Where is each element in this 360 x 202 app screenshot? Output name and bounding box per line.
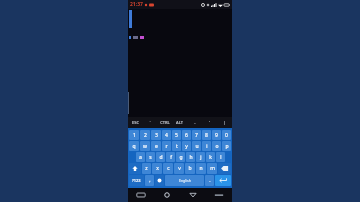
staticText: | [223,120,226,125]
button[interactable]: s [146,152,155,162]
staticText: 21:37 [130,1,143,8]
button[interactable]: Keyboard [206,188,232,202]
button[interactable]: l [216,152,225,162]
button[interactable]: ?123 [129,175,144,186]
staticText: y [185,143,188,150]
staticText: x [156,165,159,172]
button[interactable]: x [152,163,162,174]
staticText: 7 [195,132,198,139]
staticText: ' [209,120,210,125]
button[interactable]: Home [154,188,180,202]
button[interactable]: 2 [140,130,150,140]
staticText: n [199,165,203,172]
staticText: ALT [176,120,183,125]
staticText: . [209,177,211,184]
button[interactable]: g [176,152,185,162]
button[interactable]: 6 [182,130,191,140]
button[interactable]: u [192,141,201,151]
button[interactable]: - [187,117,202,128]
staticText: g [179,154,183,161]
staticText: z [145,165,148,172]
button[interactable]: v [174,163,184,174]
staticText: 3 [155,132,158,139]
staticText: p [225,143,229,150]
button[interactable]: q [129,141,139,151]
button[interactable]: ` [142,117,157,128]
button[interactable]: 3 [151,130,161,140]
staticText: l [220,154,222,161]
button[interactable]: 8 [202,130,211,140]
staticText: e [155,143,158,150]
button[interactable]: m [207,163,217,174]
staticText: b [188,165,192,172]
button[interactable]: t [172,141,181,151]
staticText: CTRL [160,120,170,125]
button[interactable]: e [151,141,161,151]
button[interactable]: 1 [129,130,139,140]
staticText: ESC [132,120,139,125]
button[interactable]: h [186,152,195,162]
button[interactable]: w [140,141,150,151]
button[interactable]: b [185,163,195,174]
button[interactable]: i [202,141,211,151]
button[interactable]: ALT [172,117,187,128]
staticText: m [210,165,215,172]
button[interactable]: y [182,141,191,151]
staticText: f [170,154,172,161]
button[interactable]: Voice input [155,175,164,186]
button[interactable]: n [196,163,206,174]
staticText: c [167,165,170,172]
staticText: English [179,178,191,183]
staticText: o [215,143,219,150]
staticText: t [176,143,178,150]
staticText: 4 [165,132,168,139]
staticText: r [165,143,168,150]
button[interactable]: 7 [192,130,201,140]
button[interactable]: ESC [128,117,142,128]
button[interactable]: . [205,175,214,186]
button[interactable]: a [136,152,145,162]
button[interactable]: Backspace [218,163,231,174]
button[interactable]: Back [128,188,154,202]
staticText: s [149,154,152,161]
staticText: d [159,154,163,161]
button[interactable]: | [217,117,232,128]
button[interactable]: Shift [129,163,141,174]
button[interactable]: z [142,163,151,174]
staticText: ` [149,120,151,125]
button[interactable]: Down [180,188,206,202]
staticText: h [189,154,193,161]
staticText: w [143,143,147,150]
staticText: 5 [175,132,178,139]
button[interactable]: c [163,163,173,174]
button[interactable]: p [222,141,231,151]
button[interactable]: f [166,152,175,162]
staticText: 1 [133,132,136,139]
staticText: 8 [205,132,208,139]
staticText: - [194,120,196,125]
button[interactable]: 4 [162,130,171,140]
button[interactable]: English [165,175,204,186]
button[interactable]: , [145,175,154,186]
button[interactable]: k [206,152,215,162]
staticText: 6 [185,132,188,139]
staticText: 2 [144,132,147,139]
staticText: , [149,177,151,184]
button[interactable]: 5 [172,130,181,140]
button[interactable]: CTRL [157,117,172,128]
staticText: q [132,143,136,150]
button[interactable]: r [162,141,171,151]
staticText: 9 [215,132,218,139]
button[interactable]: ' [202,117,217,128]
staticText: i [206,143,208,150]
button[interactable]: 0 [222,130,231,140]
button[interactable]: j [196,152,205,162]
staticText: a [139,154,142,161]
staticText: ?123 [132,178,141,183]
staticText: j [200,154,202,161]
button[interactable]: 9 [212,130,221,140]
button[interactable]: Enter [215,175,231,186]
staticText: 0 [225,132,228,139]
button[interactable]: d [156,152,165,162]
button[interactable]: o [212,141,221,151]
